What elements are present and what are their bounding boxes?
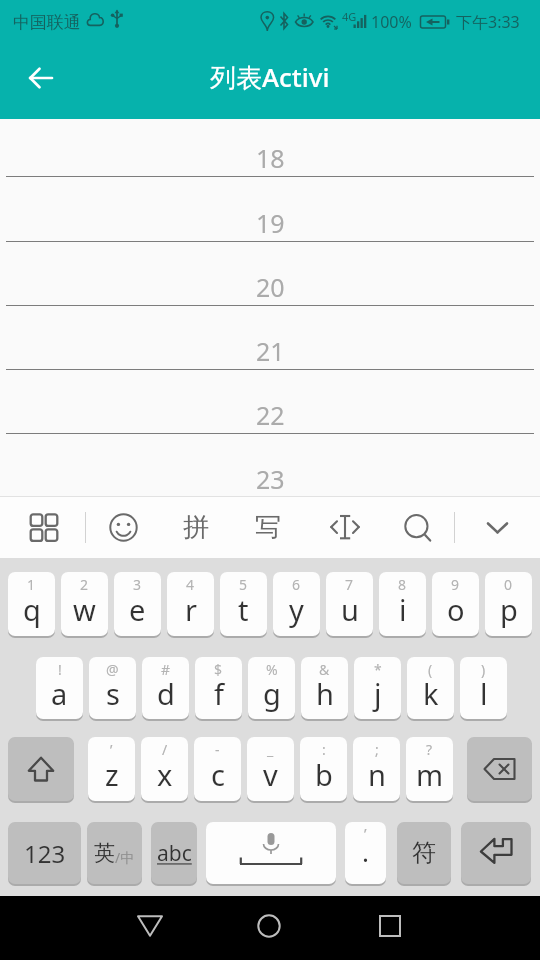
staticText: 4: [186, 575, 195, 594]
button[interactable]: $: [195, 657, 242, 719]
button[interactable]: 21: [0, 306, 540, 370]
staticText: h: [316, 674, 334, 713]
button[interactable]: _: [247, 737, 294, 801]
staticText: /: [162, 740, 168, 759]
button[interactable]: 0: [485, 572, 532, 636]
button[interactable]: (: [407, 657, 454, 719]
staticText: 21: [256, 334, 285, 368]
staticText: d: [157, 674, 175, 713]
button[interactable]: Delete: [467, 737, 532, 801]
button[interactable]: Enter: [461, 822, 531, 884]
staticText: *: [374, 660, 382, 679]
staticText: ;: [375, 740, 379, 759]
staticText: :: [322, 740, 326, 759]
button[interactable]: Keyboard layout: [14, 497, 74, 558]
button[interactable]: Shift: [8, 737, 74, 801]
button[interactable]: /: [141, 737, 188, 801]
button[interactable]: ?: [406, 737, 453, 801]
button[interactable]: 22: [0, 370, 540, 434]
button[interactable]: #: [142, 657, 189, 719]
staticText: x: [157, 755, 173, 794]
staticText: 符: [412, 838, 436, 868]
staticText: ?: [426, 740, 433, 759]
button[interactable]: &: [301, 657, 348, 719]
staticText: m: [416, 755, 444, 794]
button[interactable]: :: [300, 737, 347, 801]
button[interactable]: Recent apps: [354, 896, 426, 960]
button[interactable]: Pinyin input: [166, 497, 226, 558]
button[interactable]: Hide keyboard: [467, 497, 527, 558]
staticText: i: [399, 590, 407, 629]
staticText: 英: [94, 840, 115, 866]
button[interactable]: %: [248, 657, 295, 719]
button[interactable]: Number keyboard: [8, 822, 81, 884]
staticText: ): [481, 660, 486, 679]
button[interactable]: Emoji: [93, 497, 153, 558]
staticText: q: [23, 590, 41, 629]
button[interactable]: 7: [326, 572, 373, 636]
button[interactable]: *: [354, 657, 401, 719]
button[interactable]: 6: [273, 572, 320, 636]
button[interactable]: Search: [388, 497, 448, 558]
button[interactable]: 20: [0, 242, 540, 306]
button[interactable]: 9: [432, 572, 479, 636]
staticText: v: [263, 755, 278, 794]
button[interactable]: Navigate up: [18, 55, 64, 101]
staticText: p: [500, 590, 518, 629]
staticText: 8: [398, 575, 407, 594]
button[interactable]: 5: [220, 572, 267, 636]
button[interactable]: -: [194, 737, 241, 801]
staticText: _: [267, 740, 274, 759]
staticText: t: [238, 590, 249, 629]
staticText: 6: [292, 575, 301, 594]
staticText: 22: [256, 398, 285, 432]
button[interactable]: Symbols: [397, 822, 451, 884]
staticText: r: [185, 590, 197, 629]
staticText: o: [447, 590, 465, 629]
staticText: z: [105, 755, 119, 794]
button[interactable]: ;: [353, 737, 400, 801]
staticText: 下午3:33: [456, 11, 520, 33]
button[interactable]: !: [36, 657, 83, 719]
staticText: g: [263, 674, 281, 713]
staticText: 1: [27, 575, 36, 594]
staticText: /中: [115, 848, 135, 867]
button[interactable]: 3: [114, 572, 161, 636]
staticText: 23: [256, 462, 285, 496]
button[interactable]: 18: [0, 119, 540, 177]
button[interactable]: Switch language: [87, 822, 142, 884]
button[interactable]: ): [460, 657, 507, 719]
staticText: 123: [24, 837, 66, 870]
staticText: l: [480, 674, 488, 713]
staticText: 写: [255, 511, 281, 544]
button[interactable]: @: [89, 657, 136, 719]
staticText: !: [58, 660, 62, 679]
button[interactable]: Period: [345, 822, 386, 884]
staticText: 19: [256, 206, 285, 240]
button[interactable]: 2: [61, 572, 108, 636]
staticText: 20: [256, 270, 285, 304]
button[interactable]: 8: [379, 572, 426, 636]
button[interactable]: 19: [0, 178, 540, 242]
staticText: n: [368, 755, 386, 794]
button[interactable]: 23: [0, 434, 540, 497]
staticText: 5: [239, 575, 248, 594]
button[interactable]: abc keyboard: [151, 822, 197, 884]
button[interactable]: 1: [8, 572, 55, 636]
button[interactable]: Back: [114, 896, 186, 960]
staticText: ’: [110, 740, 113, 759]
button[interactable]: Move cursor: [315, 497, 375, 558]
staticText: 列表Activi: [210, 59, 330, 95]
button[interactable]: 4: [167, 572, 214, 636]
staticText: (: [428, 660, 433, 679]
button[interactable]: Handwriting input: [238, 497, 298, 558]
button[interactable]: ’: [88, 737, 135, 801]
staticText: y: [289, 590, 304, 629]
button[interactable]: Home: [233, 896, 305, 960]
staticText: @: [106, 660, 119, 679]
staticText: 100%: [371, 11, 412, 33]
staticText: &: [319, 660, 330, 679]
staticText: k: [423, 674, 439, 713]
staticText: u: [341, 590, 359, 629]
button[interactable]: Space: [206, 822, 336, 884]
